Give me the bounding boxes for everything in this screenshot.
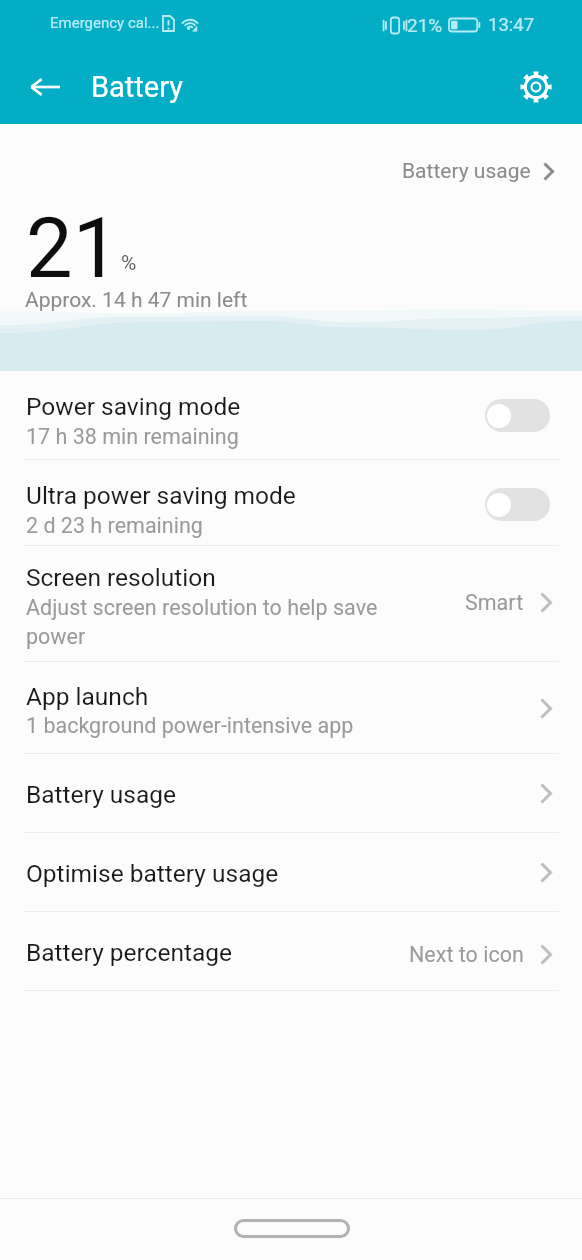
button[interactable]: Screen resolution bbox=[0, 546, 582, 661]
button[interactable]: Battery usage bbox=[0, 754, 582, 832]
button[interactable]: Optimise battery usage bbox=[0, 833, 582, 911]
staticText: Battery usage bbox=[26, 780, 177, 809]
staticText: App launch bbox=[26, 682, 149, 711]
staticText: Smart bbox=[465, 590, 524, 615]
staticText: Battery usage bbox=[402, 159, 531, 184]
button[interactable]: Toggle Power saving mode bbox=[485, 399, 550, 432]
staticText: Battery bbox=[91, 70, 183, 104]
button[interactable]: Battery usage bbox=[398, 154, 558, 189]
button[interactable]: Toggle Ultra power saving mode bbox=[485, 488, 550, 521]
button[interactable]: Power saving mode bbox=[0, 371, 582, 459]
staticText: 2 d 23 h remaining bbox=[26, 513, 203, 538]
button[interactable]: Home bbox=[234, 1219, 350, 1238]
staticText: % bbox=[121, 251, 137, 276]
staticText: 21% bbox=[407, 14, 443, 36]
staticText: Emergency cal... bbox=[50, 14, 160, 32]
staticText: 13:47 bbox=[488, 14, 535, 36]
staticText: Power saving mode bbox=[26, 392, 241, 421]
staticText: Optimise battery usage bbox=[26, 859, 279, 888]
button[interactable]: Battery percentage bbox=[0, 912, 582, 990]
staticText: Approx. 14 h 47 min left bbox=[25, 288, 248, 313]
staticText: Next to icon bbox=[409, 942, 524, 967]
staticText: Battery percentage bbox=[26, 938, 233, 967]
button[interactable]: App launch bbox=[0, 662, 582, 753]
button[interactable]: Back bbox=[17, 59, 73, 115]
staticText: 1 background power-intensive app bbox=[26, 713, 354, 738]
button[interactable]: Ultra power saving mode bbox=[0, 460, 582, 545]
staticText: Screen resolution bbox=[26, 563, 216, 592]
staticText: Ultra power saving mode bbox=[26, 481, 296, 510]
staticText: Adjust screen resolution to help save po… bbox=[26, 595, 378, 649]
button[interactable]: Settings bbox=[510, 61, 562, 113]
staticText: 21 bbox=[26, 200, 120, 297]
staticText: 17 h 38 min remaining bbox=[26, 424, 239, 449]
